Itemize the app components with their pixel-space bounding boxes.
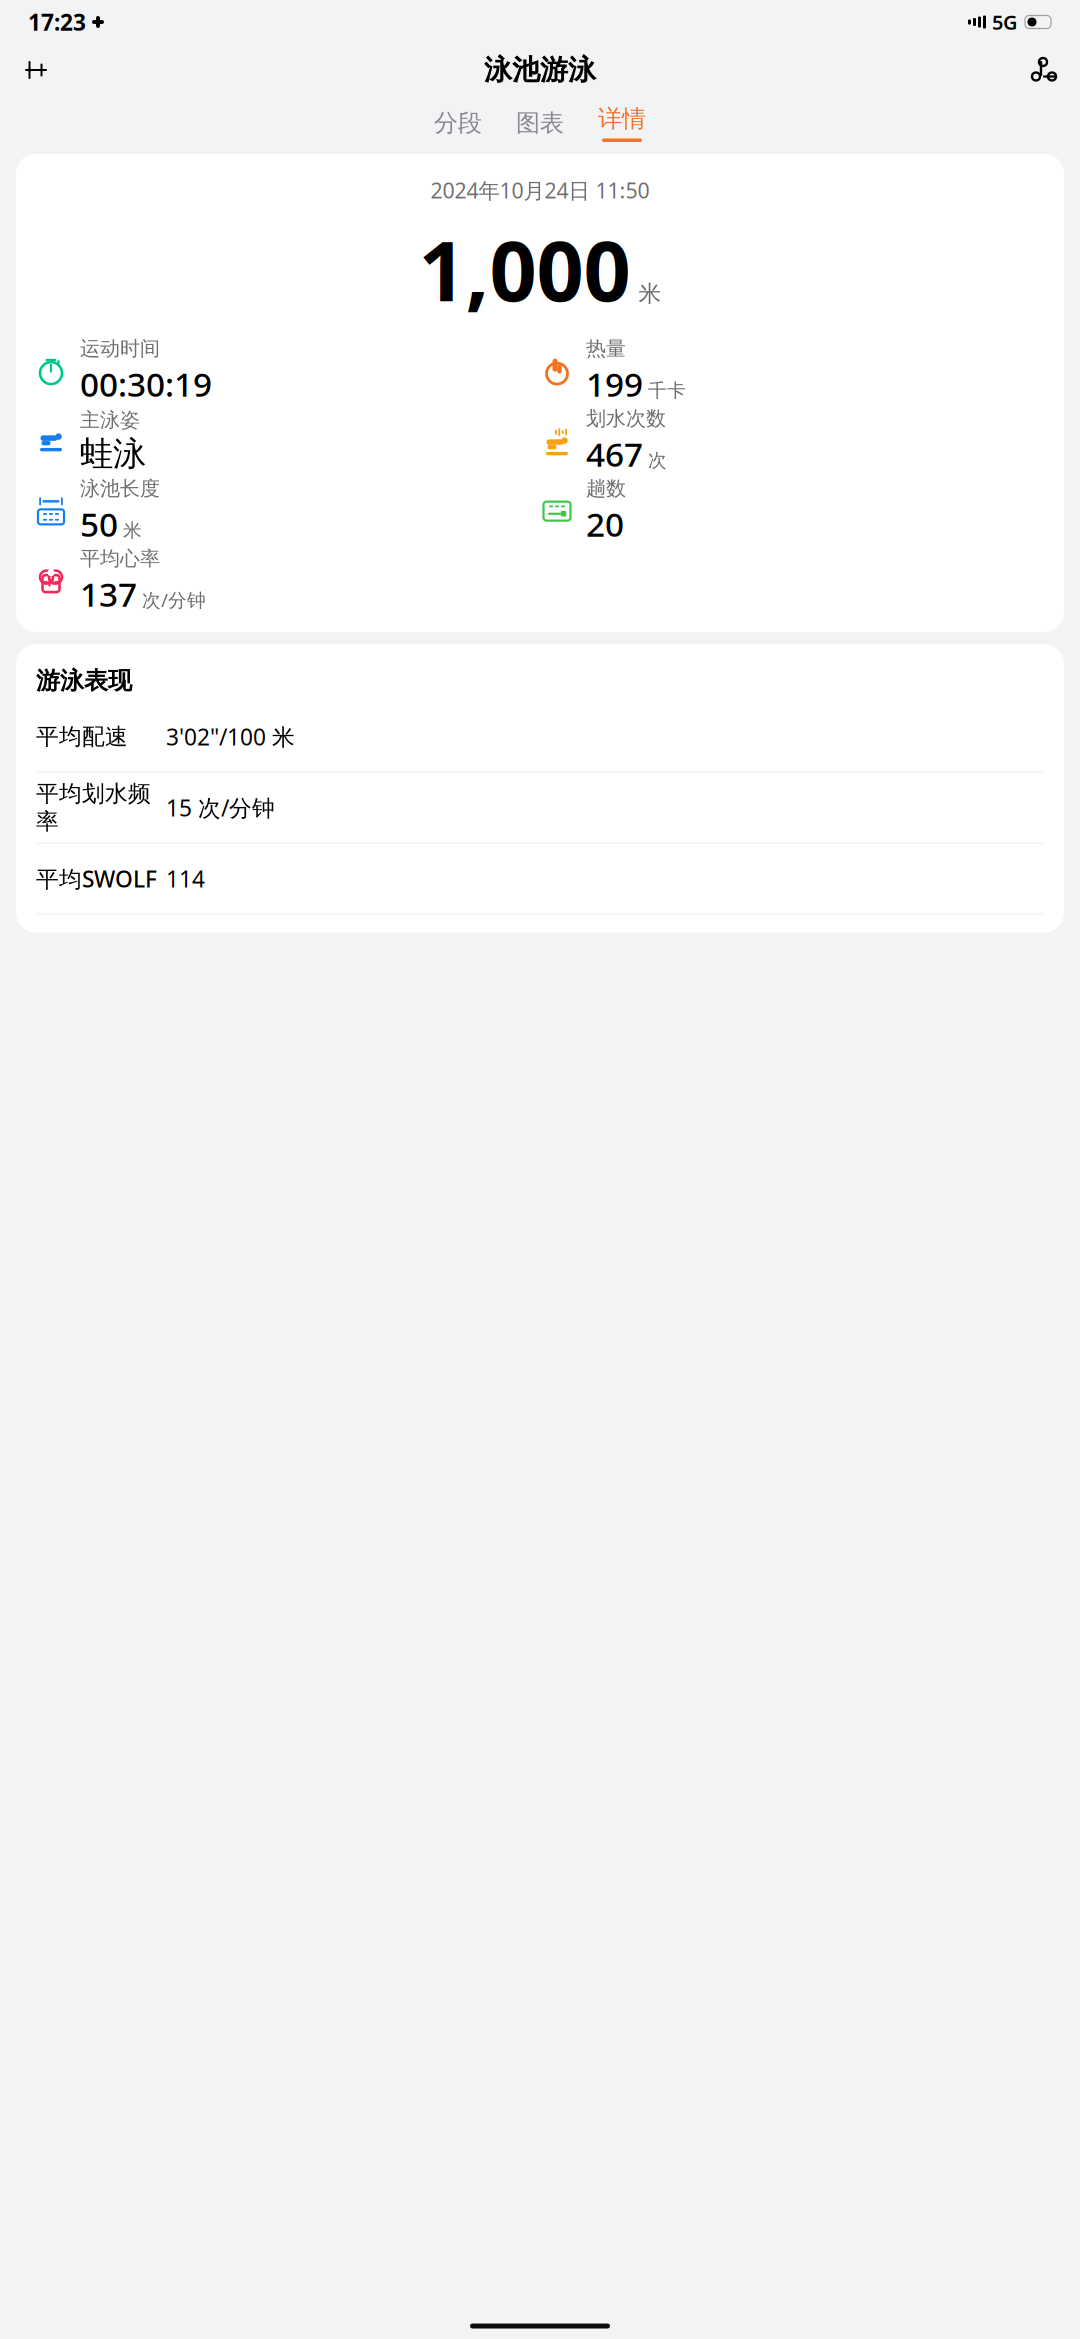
- staticText: 分段: [434, 108, 482, 138]
- staticText: 137: [80, 572, 137, 616]
- staticText: 5G: [992, 9, 1018, 35]
- button[interactable]: 详情: [594, 102, 650, 144]
- button[interactable]: 分段: [430, 102, 486, 144]
- staticText: 50: [80, 502, 118, 546]
- staticText: 泳池游泳: [484, 53, 596, 87]
- staticText: 平均心率: [80, 546, 160, 571]
- staticText: 蛙泳: [80, 433, 146, 474]
- staticText: 467: [586, 432, 643, 476]
- staticText: 千卡: [648, 379, 686, 402]
- staticText: 主泳姿: [80, 408, 140, 432]
- staticText: 热量: [586, 336, 626, 361]
- button[interactable]: 返回: [14, 48, 58, 92]
- staticText: 运动时间: [80, 336, 160, 361]
- staticText: 114: [166, 863, 205, 894]
- button[interactable]: 图表: [512, 102, 568, 144]
- staticText: 详情: [598, 104, 646, 133]
- staticText: 3'02"/100 米: [166, 721, 295, 752]
- staticText: 1,000: [418, 214, 630, 324]
- staticText: 趟数: [586, 476, 626, 501]
- staticText: 米: [123, 519, 142, 542]
- staticText: 泳池长度: [80, 476, 160, 501]
- staticText: 次/分钟: [142, 587, 206, 612]
- staticText: 米: [638, 280, 661, 308]
- button[interactable]: 分享: [1022, 48, 1066, 92]
- staticText: 2024年10月24日 11:50: [430, 176, 649, 204]
- staticText: 17:23: [28, 7, 86, 37]
- staticText: 平均配速: [36, 723, 128, 750]
- staticText: 20: [586, 502, 624, 546]
- staticText: 15 次/分钟: [166, 792, 275, 823]
- staticText: 00:30:19: [80, 362, 212, 406]
- staticText: 图表: [516, 108, 564, 138]
- staticText: 平均划水频率: [36, 780, 151, 835]
- staticText: 划水次数: [586, 406, 666, 431]
- staticText: 次: [648, 449, 667, 472]
- staticText: 游泳表现: [36, 666, 132, 696]
- staticText: 平均SWOLF: [36, 863, 157, 894]
- staticText: 199: [586, 362, 643, 406]
